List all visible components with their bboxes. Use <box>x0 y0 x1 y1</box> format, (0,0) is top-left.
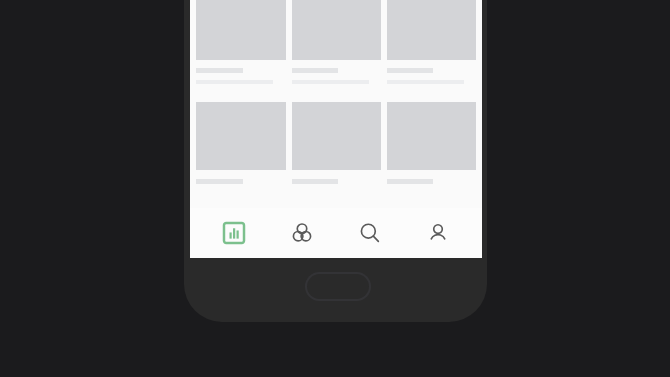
button[interactable]: Search <box>346 209 394 257</box>
button[interactable]: Profile <box>414 209 462 257</box>
button[interactable]: Stats <box>210 209 258 257</box>
button[interactable]: Discover <box>278 209 326 257</box>
button[interactable]: Home <box>305 272 371 301</box>
